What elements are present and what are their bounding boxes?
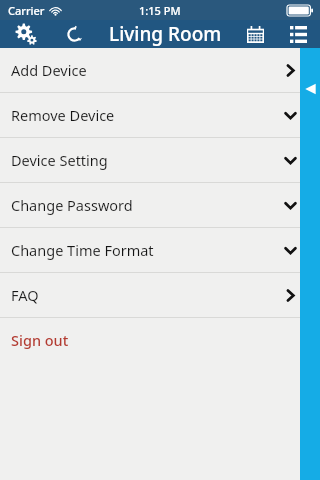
staticText: Add Device	[11, 60, 87, 80]
staticText: Change Password	[11, 195, 133, 215]
button[interactable]: Change Time Format	[0, 228, 320, 272]
button[interactable]: FAQ	[0, 273, 320, 317]
button[interactable]: List	[276, 20, 320, 48]
button[interactable]: Sign out	[0, 318, 320, 362]
staticText: FAQ	[11, 285, 39, 305]
staticText: Carrier	[8, 3, 45, 18]
button[interactable]: Calendar	[234, 20, 276, 48]
button[interactable]: Refresh	[52, 20, 96, 48]
button[interactable]: Add Device	[0, 48, 320, 92]
staticText: Living Room	[109, 21, 222, 47]
staticText: Device Setting	[11, 150, 108, 170]
staticText: 1:15 PM	[139, 3, 181, 18]
staticText: Sign out	[11, 330, 69, 350]
button[interactable]: Change Password	[0, 183, 320, 227]
button[interactable]: Open side panel	[300, 48, 320, 480]
staticText: Change Time Format	[11, 240, 154, 260]
button[interactable]: Device Setting	[0, 138, 320, 182]
staticText: Remove Device	[11, 105, 115, 125]
button[interactable]: Settings	[0, 20, 52, 48]
button[interactable]: Remove Device	[0, 93, 320, 137]
